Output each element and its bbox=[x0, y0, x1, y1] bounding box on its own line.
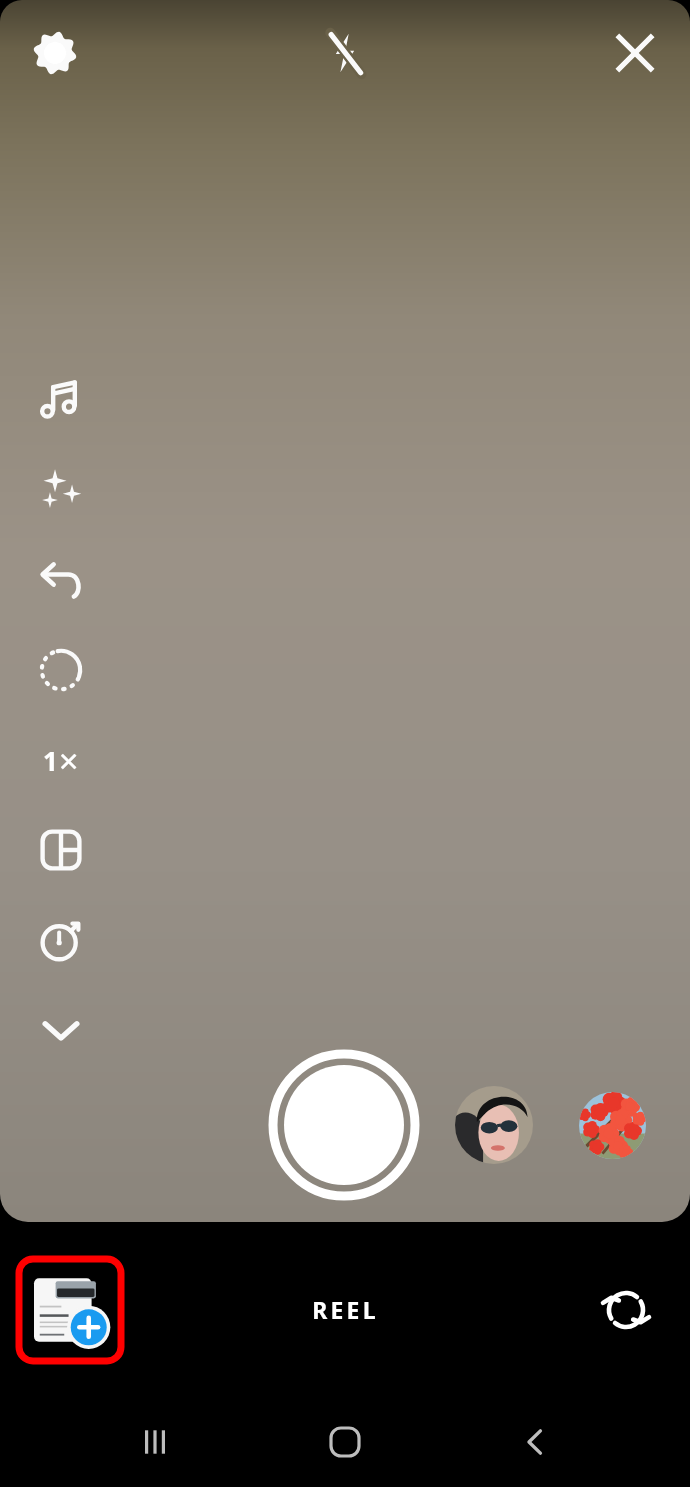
button[interactable]: Flash off bbox=[310, 18, 380, 88]
button[interactable]: More options bbox=[16, 985, 106, 1075]
button[interactable]: Speed 1x bbox=[16, 715, 106, 805]
button[interactable]: Effect preview bbox=[455, 1086, 533, 1164]
staticText: REEL bbox=[312, 1294, 379, 1325]
staticText: 1✕ bbox=[43, 743, 80, 778]
button[interactable]: Back bbox=[502, 1409, 568, 1475]
button[interactable]: Camera settings bbox=[20, 18, 90, 88]
button[interactable]: Timer bbox=[16, 895, 106, 985]
button[interactable]: Close bbox=[600, 18, 670, 88]
button[interactable]: Effect preview bbox=[579, 1092, 646, 1159]
button[interactable]: Switch camera bbox=[590, 1274, 662, 1346]
button[interactable]: Layout bbox=[16, 805, 106, 895]
button[interactable]: Home bbox=[312, 1409, 378, 1475]
button[interactable]: Capture bbox=[272, 1053, 416, 1197]
button[interactable]: Open gallery bbox=[16, 1256, 124, 1364]
button[interactable]: Recents bbox=[122, 1409, 188, 1475]
button[interactable]: REEL bbox=[286, 1280, 405, 1339]
button[interactable]: Length 15 seconds bbox=[16, 625, 106, 715]
button[interactable]: Music bbox=[16, 355, 106, 445]
button[interactable]: Effects bbox=[16, 445, 106, 535]
button[interactable]: Undo bbox=[16, 535, 106, 625]
